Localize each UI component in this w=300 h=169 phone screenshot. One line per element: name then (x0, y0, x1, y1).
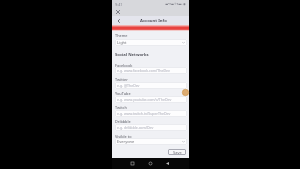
button[interactable]: e.g. dribbble.com/Dev (115, 124, 187, 131)
staticText: e.g. www.facebook.com/TheDev (117, 68, 170, 73)
staticText: Dribbble (115, 119, 131, 124)
staticText: Account Info (140, 18, 167, 24)
button[interactable]: Back (163, 159, 172, 168)
staticText: Save (173, 150, 182, 155)
staticText: Theme (115, 33, 128, 38)
button[interactable]: Close (114, 8, 122, 16)
staticText: Light (117, 40, 127, 45)
button[interactable]: Everyone (115, 138, 187, 145)
staticText: 9:41 (115, 2, 123, 7)
staticText: Visible to (115, 134, 132, 139)
staticText: Everyone (117, 139, 135, 144)
staticText: ▬•▾▬↑▾▬∙◉ (165, 2, 186, 6)
button[interactable]: e.g. www.youtube.com/c/TheDev (115, 96, 187, 103)
staticText: e.g. @TheDev (117, 83, 140, 88)
button[interactable]: e.g. @TheDev (115, 82, 187, 89)
staticText: Twitter (115, 77, 128, 82)
staticText: YouTube (115, 91, 131, 96)
staticText: Twitch (115, 105, 127, 110)
button[interactable]: Recents (128, 159, 137, 168)
staticText: Social Networks (115, 52, 149, 58)
button[interactable]: Light (115, 39, 187, 46)
button[interactable]: e.g. www.twitch.tv/SuperTheDev (115, 110, 187, 117)
button[interactable]: Save (168, 149, 186, 155)
staticText: e.g. www.youtube.com/c/TheDev (117, 97, 172, 102)
staticText: Facebook (115, 63, 133, 68)
staticText: e.g. dribbble.com/Dev (117, 125, 154, 130)
button[interactable]: e.g. www.facebook.com/TheDev (115, 67, 187, 74)
button[interactable]: Back (114, 16, 123, 25)
staticText: e.g. www.twitch.tv/SuperTheDev (117, 111, 171, 116)
button[interactable]: Home (146, 159, 155, 168)
